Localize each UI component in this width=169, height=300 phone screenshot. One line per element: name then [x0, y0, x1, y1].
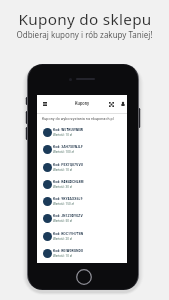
staticText: Wartość: 10 zł	[53, 254, 73, 258]
staticText: Kupony do sklepu	[18, 9, 152, 30]
button[interactable]: Kod: R4B4DCNL8M	[37, 176, 127, 193]
staticText: Kod: 3AH7SEWJLF	[53, 144, 83, 149]
button[interactable]: Kod: W5TRUVWEW	[37, 124, 127, 141]
staticText: Wartość: 150 zł	[53, 202, 74, 206]
button[interactable]: Open navigation menu	[39, 95, 50, 113]
staticText: Wartość: 10 zł	[53, 168, 73, 172]
staticText: Wartość: 100 zł	[53, 150, 74, 154]
button[interactable]: Kod: PEX7Q87VVU	[37, 159, 127, 176]
button[interactable]: Scan code	[106, 95, 117, 113]
staticText: Kod: 9KY4AXX6L9	[53, 196, 83, 201]
button[interactable]: Kod: KOC1YH7T8N	[37, 228, 127, 245]
button[interactable]: Kod: R0IW0RGNDO	[37, 245, 127, 262]
staticText: Kod: PEX7Q87VVU	[53, 162, 84, 167]
staticText: Kod: R4B4DCNL8M	[53, 179, 84, 184]
button[interactable]: Account	[117, 95, 128, 113]
staticText: Kod: W5TRUVWEW	[53, 127, 84, 132]
staticText: Kod: JN1Z0DYGZV	[53, 213, 83, 218]
button[interactable]: Kod: 9KY4AXX6L9	[37, 193, 127, 210]
staticText: Kod: KOC1YH7T8N	[53, 231, 84, 236]
button[interactable]: Kod: JN1Z0DYGZV	[37, 210, 127, 227]
staticText: Wartość: 20 zł	[53, 237, 73, 241]
staticText: Wartość: 10 zł	[53, 133, 73, 137]
staticText: Kupony	[75, 101, 90, 107]
button[interactable]: Kod: 3AH7SEWJLF	[37, 141, 127, 158]
staticText: Wartość: 50 zł	[53, 219, 73, 223]
staticText: Kupony do wykorzystania na ekuponach.pl	[42, 116, 114, 121]
staticText: Kod: R0IW0RGNDO	[53, 248, 84, 253]
staticText: Wartość: 30 zł	[53, 185, 73, 189]
staticText: Odbieraj kupony i rób zakupy Taniej!	[16, 29, 153, 40]
